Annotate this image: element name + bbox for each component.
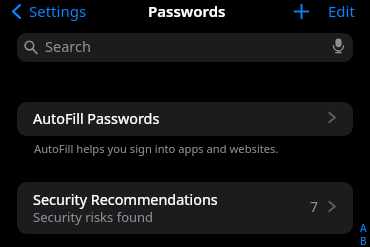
button[interactable]: Search <box>17 33 353 62</box>
button[interactable]: Security Recommendations <box>17 182 353 234</box>
button[interactable]: Edit <box>322 0 361 22</box>
button[interactable]: AutoFill Passwords <box>17 102 353 136</box>
staticText: A <box>360 221 367 235</box>
staticText: AutoFill Passwords <box>33 109 160 129</box>
staticText: Passwords <box>148 1 226 21</box>
staticText: AutoFill helps you sign into apps and we… <box>34 141 279 156</box>
button[interactable]: Voice search <box>329 36 347 54</box>
button[interactable]: Add password <box>291 1 312 22</box>
staticText: Edit <box>328 1 355 21</box>
staticText: Security risks found <box>33 208 154 226</box>
button[interactable]: Section index <box>356 217 370 247</box>
staticText: Settings <box>29 1 87 21</box>
button[interactable]: Settings <box>8 0 93 22</box>
staticText: Security Recommendations <box>33 190 218 210</box>
staticText: 7 <box>310 197 319 216</box>
staticText: B <box>360 234 367 247</box>
staticText: Search <box>45 36 91 56</box>
